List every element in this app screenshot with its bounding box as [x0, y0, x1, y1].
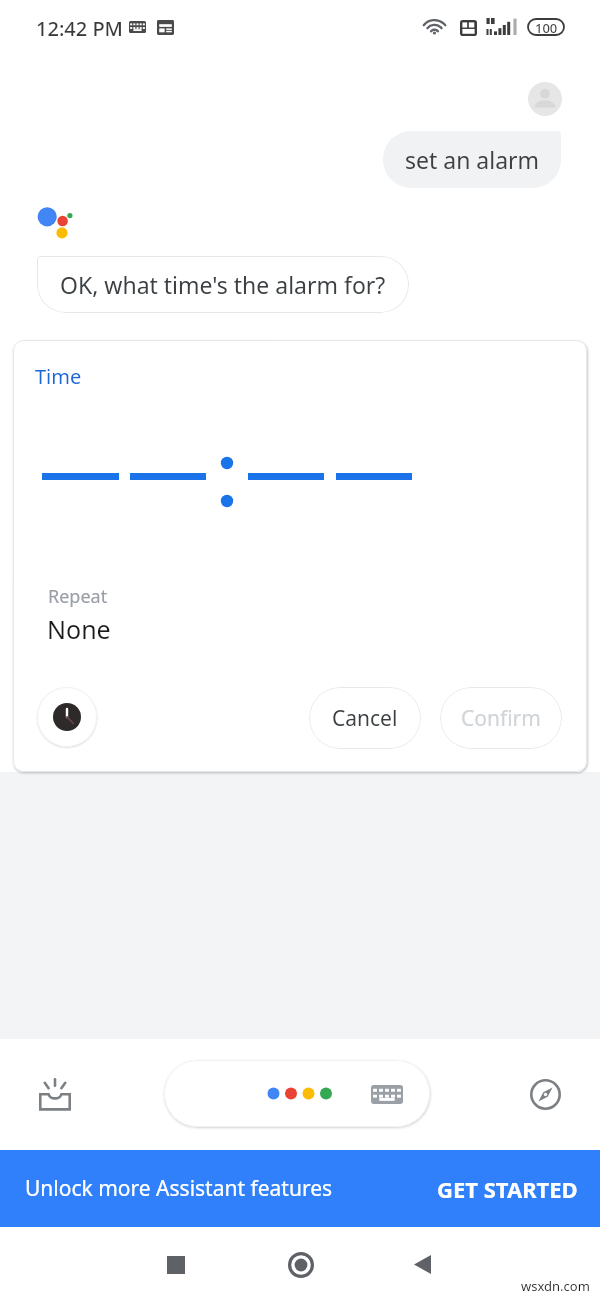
button[interactable]: GET STARTED	[417, 1150, 600, 1227]
button[interactable]: Unlock more Assistant features	[0, 1150, 600, 1227]
staticText: GET STARTED	[437, 1174, 578, 1204]
button[interactable]: Assistant input	[164, 1060, 430, 1127]
button[interactable]: Home	[270, 1234, 331, 1295]
staticText: OK, what time's the alarm for?	[60, 269, 386, 300]
button[interactable]: Recents	[145, 1234, 206, 1295]
staticText: wsxdn.com	[521, 1277, 590, 1295]
button[interactable]: Pick time	[37, 687, 97, 747]
button[interactable]: Cancel	[309, 687, 421, 749]
button[interactable]: Snapshot	[25, 1064, 85, 1124]
button[interactable]: OK, what time's the alarm for?	[37, 256, 409, 313]
button[interactable]: Account	[528, 82, 562, 116]
staticText: 100	[535, 19, 558, 35]
button[interactable]: set an alarm	[383, 131, 561, 188]
staticText: Unlock more Assistant features	[25, 1174, 333, 1203]
staticText: set an alarm	[405, 144, 540, 175]
staticText: Confirm	[461, 704, 541, 733]
staticText: Repeat	[48, 584, 108, 609]
button[interactable]: Back	[392, 1234, 453, 1295]
staticText: 12:42 PM	[36, 15, 123, 42]
staticText: Time	[35, 363, 82, 390]
button[interactable]: Confirm	[440, 687, 562, 749]
staticText: Cancel	[332, 704, 398, 733]
button[interactable]: Explore	[515, 1064, 575, 1124]
staticText: None	[47, 612, 111, 646]
